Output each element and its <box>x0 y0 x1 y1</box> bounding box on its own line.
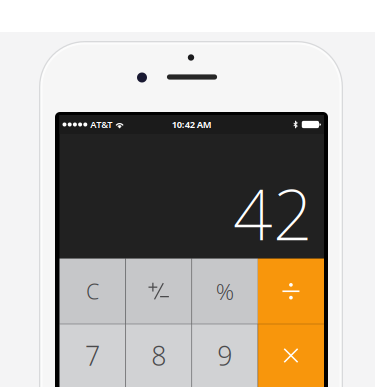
button[interactable]: 7 <box>59 324 126 387</box>
staticText: AT&T <box>90 118 112 131</box>
staticText: % <box>216 276 234 306</box>
button[interactable]: Divide <box>258 258 324 324</box>
button[interactable]: 8 <box>126 324 192 387</box>
staticText: 9 <box>217 338 232 373</box>
staticText: C <box>86 277 99 305</box>
staticText: 42 <box>233 167 313 259</box>
staticText: 8 <box>151 338 166 373</box>
staticText: 10:42 AM <box>172 118 212 131</box>
button[interactable]: Multiply <box>258 324 324 387</box>
staticText: 7 <box>85 338 100 373</box>
button[interactable]: Plus minus <box>126 258 192 324</box>
button[interactable]: % <box>192 258 258 324</box>
button[interactable]: 9 <box>192 324 258 387</box>
button[interactable]: C <box>59 258 126 324</box>
